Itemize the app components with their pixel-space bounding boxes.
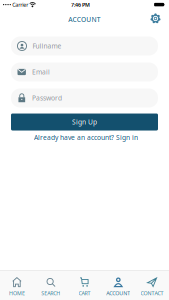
staticText: CONTACT	[141, 290, 164, 297]
button[interactable]: Email	[11, 62, 158, 81]
staticText: SEARCH	[41, 290, 60, 297]
staticText: 7:46 PM	[71, 1, 90, 8]
staticText: Password	[32, 94, 62, 102]
button[interactable]: Sign Up	[11, 113, 158, 130]
staticText: Sign Up	[72, 118, 97, 126]
staticText: Already have an account? Sign in	[34, 133, 138, 142]
button[interactable]: Already have an account? Sign in	[34, 133, 138, 142]
button[interactable]: Settings	[150, 13, 160, 23]
staticText: Email	[32, 68, 50, 76]
staticText: HOME	[9, 290, 25, 297]
button[interactable]: CONTACT	[135, 271, 169, 300]
staticText: CART	[78, 290, 90, 297]
button[interactable]: Fullname	[11, 36, 158, 55]
staticText: Carrier	[12, 1, 28, 8]
staticText: Fullname	[32, 42, 61, 50]
staticText: ACCOUNT	[68, 15, 101, 24]
staticText: ACCOUNT	[106, 290, 130, 297]
button[interactable]: HOME	[0, 271, 34, 300]
button[interactable]: ACCOUNT	[101, 271, 135, 300]
button[interactable]: CART	[68, 271, 101, 300]
button[interactable]: SEARCH	[34, 271, 68, 300]
button[interactable]: Password	[11, 88, 158, 107]
